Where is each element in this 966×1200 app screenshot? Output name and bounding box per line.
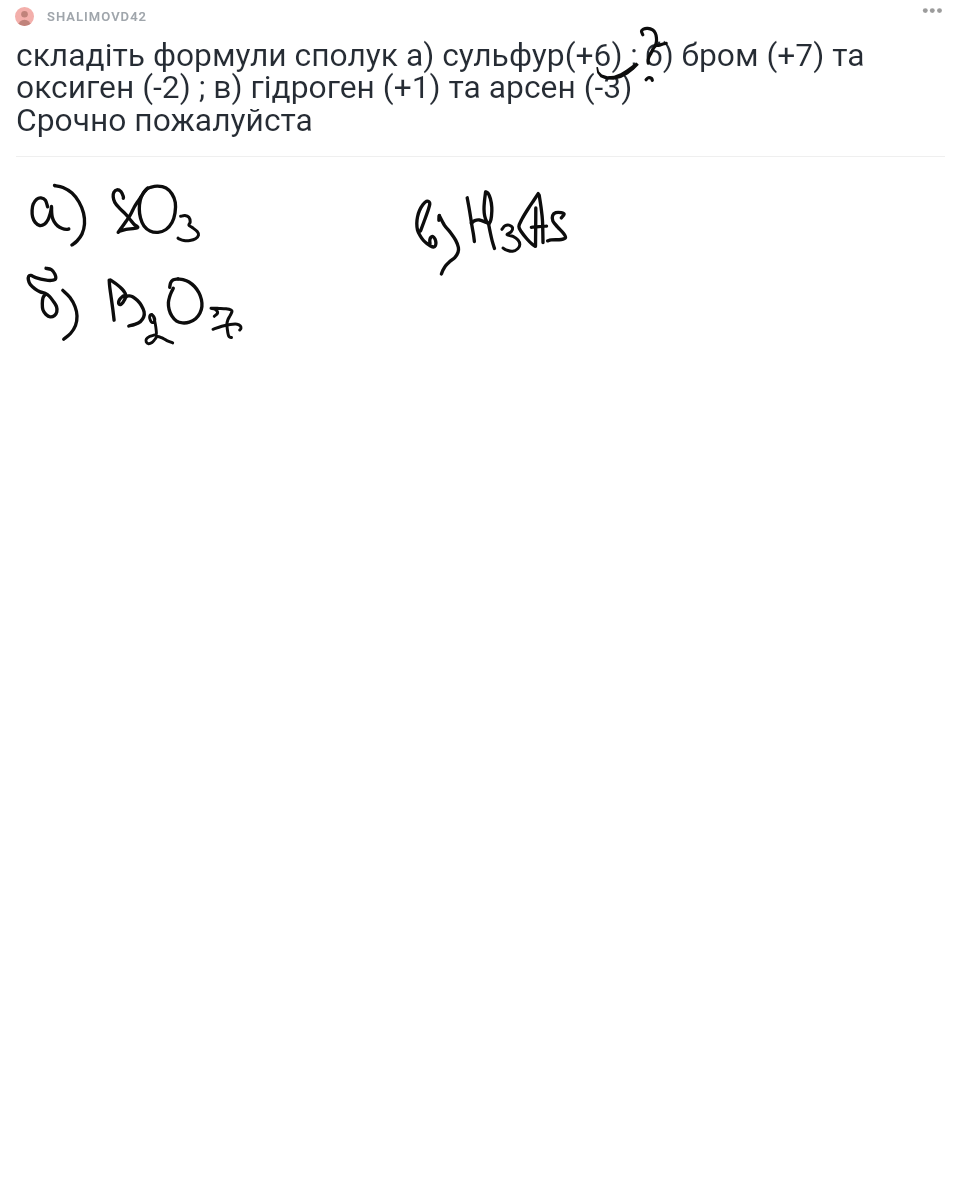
other: Handwritten answer (0, 0, 966, 1200)
button[interactable]: складіть формули сполук а) сульфур(+6) ;… (0, 32, 966, 139)
button[interactable]: More options (918, 0, 960, 32)
staticText: складіть формули сполук а) сульфур(+6) ;… (16, 36, 952, 139)
staticText: SHALIMOVD42 (47, 9, 148, 24)
button[interactable]: User avatar (15, 7, 34, 26)
